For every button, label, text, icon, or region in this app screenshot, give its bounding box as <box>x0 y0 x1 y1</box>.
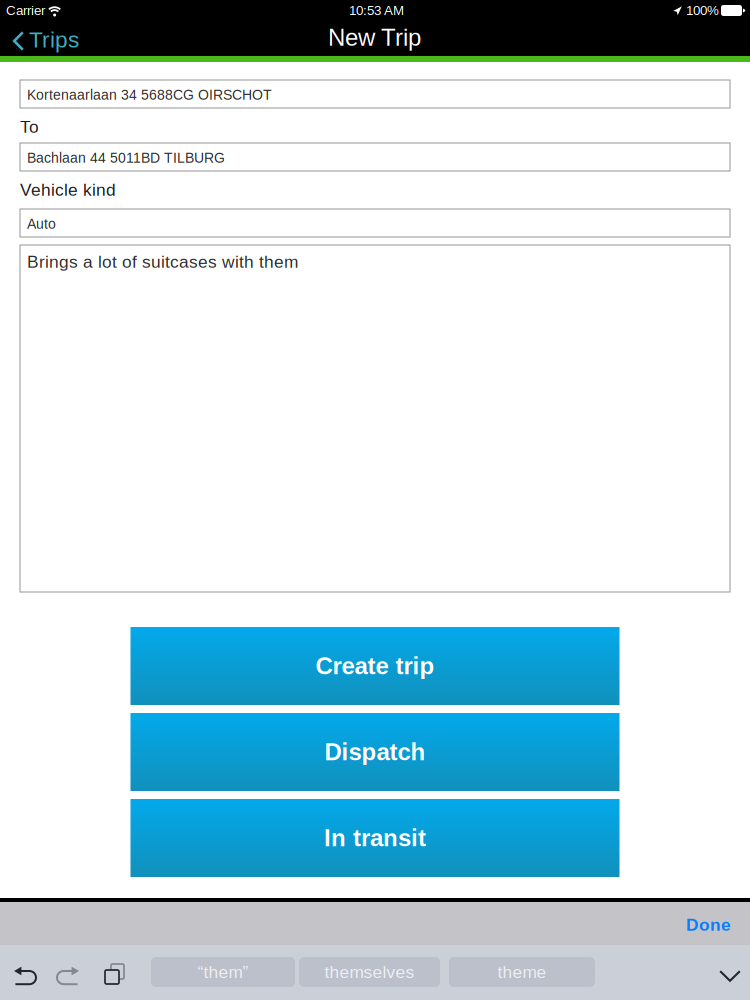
button[interactable]: Create trip <box>130 627 619 705</box>
staticText: Dispatch <box>324 739 425 765</box>
staticText: Trips <box>29 27 79 52</box>
staticText: “them” <box>197 962 248 982</box>
button[interactable]: theme <box>449 957 595 987</box>
button[interactable]: In transit <box>130 799 619 877</box>
staticText: Vehicle kind <box>20 180 116 199</box>
staticText: Create trip <box>315 653 434 679</box>
button[interactable]: Dispatch <box>130 713 619 791</box>
staticText: Carrier <box>6 3 45 18</box>
button[interactable]: Done <box>640 904 750 944</box>
staticText: Bachlaan 44 5011BD TILBURG <box>27 150 225 166</box>
button[interactable]: Undo <box>6 957 44 995</box>
staticText: Auto <box>27 216 56 232</box>
staticText: Done <box>686 915 731 934</box>
button[interactable]: Hide keyboard <box>700 954 750 1000</box>
staticText: To <box>20 117 39 136</box>
button[interactable]: Redo <box>49 957 87 995</box>
button[interactable]: themselves <box>299 957 440 987</box>
staticText: Brings a lot of suitcases with them <box>27 252 298 271</box>
button[interactable]: Trips <box>0 22 92 56</box>
button[interactable]: “them” <box>151 957 295 987</box>
staticText: Kortenaarlaan 34 5688CG OIRSCHOT <box>27 87 272 103</box>
staticText: themselves <box>324 962 414 982</box>
staticText: theme <box>497 962 546 982</box>
staticText: In transit <box>324 825 426 851</box>
staticText: New Trip <box>328 24 421 51</box>
button[interactable]: Copy <box>99 957 133 995</box>
staticText: 100% <box>686 3 719 18</box>
staticText: 10:53 AM <box>349 3 404 18</box>
